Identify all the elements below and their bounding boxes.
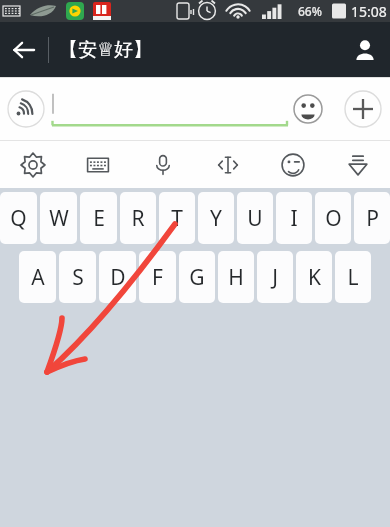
button[interactable]: E xyxy=(80,192,117,244)
button[interactable]: Emoji xyxy=(260,141,325,188)
button[interactable]: H xyxy=(218,251,254,303)
staticText: W xyxy=(49,204,69,233)
button[interactable]: F xyxy=(139,251,176,303)
staticText: Y xyxy=(210,204,222,233)
button[interactable]: Q xyxy=(0,192,37,244)
staticText: K xyxy=(308,263,321,292)
staticText: A xyxy=(31,263,45,292)
staticText: 15:08 xyxy=(351,2,387,21)
button[interactable]: K xyxy=(296,251,332,303)
button[interactable]: J xyxy=(257,251,293,303)
staticText: R xyxy=(131,204,145,233)
button[interactable]: P xyxy=(354,192,390,244)
button[interactable]: A xyxy=(19,251,56,303)
button[interactable]: R xyxy=(120,192,156,244)
button[interactable]: Hide keyboard xyxy=(325,141,390,188)
button[interactable]: W xyxy=(40,192,77,244)
staticText: Q xyxy=(10,204,27,233)
button[interactable]: O xyxy=(315,192,351,244)
staticText: H xyxy=(228,263,244,292)
button[interactable]: Back xyxy=(0,26,48,74)
button[interactable]: G xyxy=(179,251,215,303)
button[interactable]: Add attachment xyxy=(340,86,386,132)
staticText: S xyxy=(72,263,84,292)
staticText: U xyxy=(247,204,263,233)
button[interactable]: S xyxy=(59,251,96,303)
staticText: O xyxy=(325,204,342,233)
button[interactable]: T xyxy=(159,192,195,244)
button[interactable]: Settings xyxy=(0,141,65,188)
staticText: T xyxy=(171,204,183,233)
staticText: 【安♕好】 xyxy=(59,38,153,62)
button[interactable]: Voice xyxy=(130,141,195,188)
staticText: L xyxy=(347,263,359,292)
staticText: D xyxy=(110,263,126,292)
button[interactable]: U xyxy=(237,192,273,244)
button[interactable]: Keyboard layout xyxy=(65,141,130,188)
button[interactable]: Text cursor xyxy=(195,141,260,188)
button[interactable]: Y xyxy=(198,192,234,244)
button[interactable]: I xyxy=(276,192,312,244)
button[interactable]: D xyxy=(99,251,136,303)
button[interactable] xyxy=(50,85,288,133)
staticText: P xyxy=(366,204,379,233)
button[interactable]: Profile xyxy=(340,25,390,75)
button[interactable]: L xyxy=(335,251,371,303)
staticText: I xyxy=(290,204,298,233)
staticText: J xyxy=(272,263,278,292)
staticText: F xyxy=(152,263,163,292)
staticText: 66% xyxy=(298,3,322,19)
staticText: G xyxy=(189,263,205,292)
button[interactable]: Emoji xyxy=(288,89,328,129)
staticText: E xyxy=(93,204,105,233)
button[interactable]: Voice input xyxy=(4,87,48,131)
